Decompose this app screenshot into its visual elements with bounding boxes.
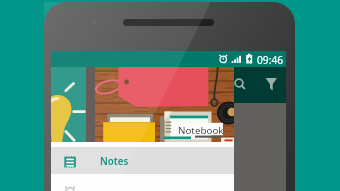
button[interactable]: Reminders	[51, 177, 234, 191]
staticText: Notes	[100, 155, 129, 168]
button[interactable]: Search	[234, 71, 258, 95]
button[interactable]: Filter notes	[259, 71, 283, 95]
staticText: 09:46	[257, 53, 284, 67]
button[interactable]: Notes	[51, 147, 234, 174]
staticText: Notebook	[178, 124, 224, 137]
